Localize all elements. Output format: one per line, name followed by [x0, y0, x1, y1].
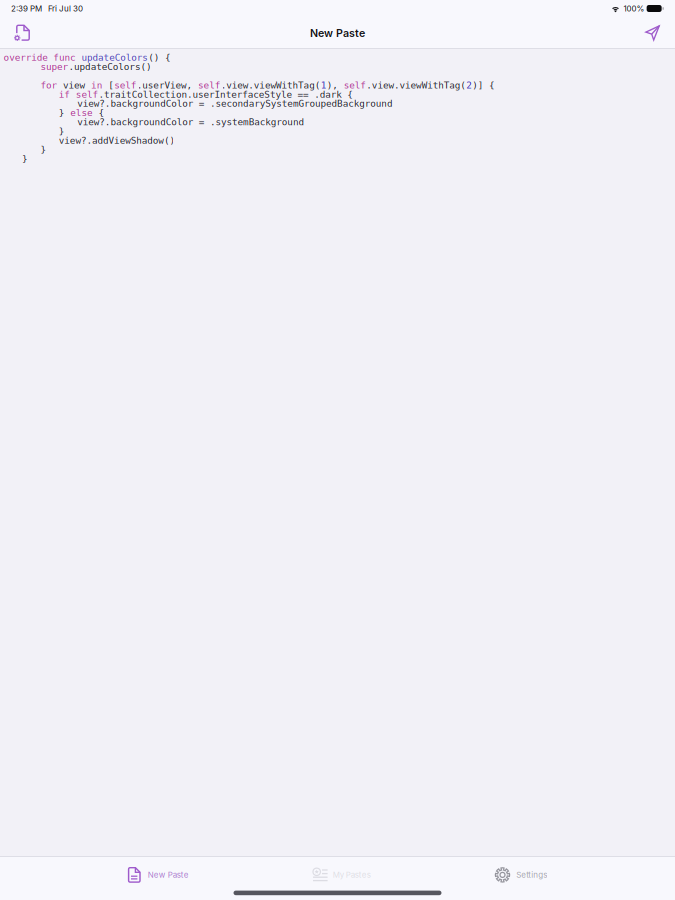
- staticText: Fri Jul 30: [48, 4, 83, 13]
- staticText: .userView,: [137, 80, 198, 91]
- staticText: self: [344, 80, 366, 91]
- staticText: .traitCollection.userInterfaceStyle == .…: [98, 89, 353, 100]
- staticText: .view.viewWithTag(: [366, 80, 466, 91]
- staticText: [: [108, 80, 114, 91]
- staticText: self: [76, 89, 98, 100]
- staticText: .updateColors(): [68, 61, 152, 72]
- staticText: New Paste: [310, 26, 365, 39]
- staticText: else: [70, 107, 98, 118]
- staticText: view?.addViewShadow(): [59, 135, 175, 146]
- staticText: 1: [321, 80, 327, 91]
- staticText: for: [40, 80, 63, 91]
- staticText: updateColors: [81, 52, 148, 63]
- button[interactable]: Send paste: [638, 21, 667, 45]
- staticText: }: [22, 153, 28, 164]
- staticText: view?.backgroundColor = .secondarySystem…: [77, 98, 393, 109]
- staticText: }: [59, 107, 70, 118]
- staticText: override func: [4, 52, 81, 63]
- staticText: self: [198, 80, 221, 91]
- staticText: view: [63, 80, 91, 91]
- button[interactable]: New Paste: [128, 866, 189, 884]
- staticText: self: [114, 80, 137, 91]
- staticText: }: [59, 126, 65, 137]
- button[interactable]: Settings: [495, 866, 547, 884]
- staticText: Settings: [516, 870, 547, 880]
- staticText: 2:39 PM: [11, 4, 42, 13]
- staticText: .view.viewWithTag(: [221, 80, 321, 91]
- staticText: view?.backgroundColor = .systemBackgroun…: [77, 117, 304, 127]
- staticText: in: [91, 80, 108, 91]
- staticText: My Pastes: [333, 870, 371, 880]
- staticText: if: [59, 89, 76, 100]
- staticText: 100%: [623, 4, 644, 13]
- staticText: ),: [327, 80, 344, 91]
- staticText: 2: [466, 80, 472, 91]
- staticText: {: [98, 107, 104, 118]
- button[interactable]: My Pastes: [313, 866, 371, 884]
- staticText: )] {: [472, 80, 495, 91]
- button[interactable]: Paste options: [7, 20, 37, 45]
- staticText: New Paste: [148, 870, 189, 880]
- staticText: }: [40, 144, 46, 155]
- staticText: super: [40, 61, 68, 72]
- staticText: () {: [148, 52, 171, 63]
